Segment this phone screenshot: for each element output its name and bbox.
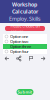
- button[interactable]: Option two: [3, 39, 47, 44]
- staticText: Employ. Skills: [9, 15, 41, 22]
- staticText: Option three: [10, 44, 31, 49]
- staticText: Option four: [10, 49, 29, 54]
- button[interactable]: Flag: [25, 54, 37, 63]
- staticText: Option two: [10, 39, 28, 44]
- button[interactable]: Back: [1, 54, 13, 63]
- button[interactable]: Option four: [3, 49, 47, 54]
- staticText: Please choose an answer: [10, 23, 39, 34]
- button[interactable]: Forward: [37, 54, 49, 63]
- staticText: Workshop Calculator: [12, 1, 38, 15]
- button[interactable]: Option one: [3, 34, 47, 39]
- button[interactable]: Option three: [3, 44, 47, 49]
- button[interactable]: Share: [13, 54, 25, 63]
- staticText: Option one: [10, 34, 28, 39]
- staticText: Submit: [17, 89, 32, 95]
- button[interactable]: Submit: [16, 89, 33, 95]
